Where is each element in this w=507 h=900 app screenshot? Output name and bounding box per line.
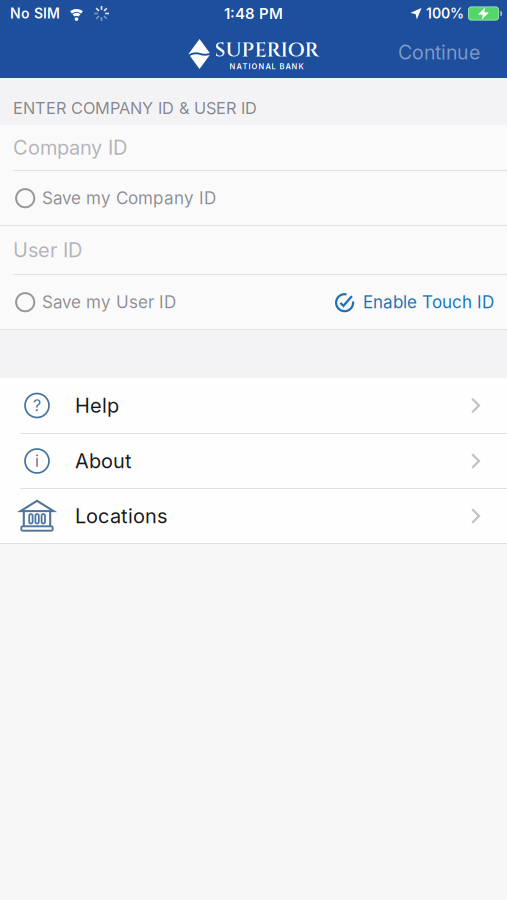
button[interactable]: Save my Company ID — [0, 171, 507, 225]
staticText: Continue — [398, 41, 480, 64]
staticText: Company ID — [13, 135, 127, 160]
staticText: i — [35, 451, 39, 471]
staticText: About — [75, 449, 132, 473]
staticText: No SIM — [10, 5, 60, 22]
staticText: N A T I O N A L B A N K — [229, 62, 303, 71]
staticText: Locations — [75, 504, 167, 528]
staticText: Help — [75, 393, 119, 418]
staticText: 1:48 PM — [224, 4, 283, 22]
staticText: User ID — [13, 238, 82, 262]
staticText: ENTER COMPANY ID & USER ID — [13, 98, 257, 118]
staticText: SUPERIOR — [214, 37, 318, 64]
staticText: Save my Company ID — [42, 188, 216, 208]
button[interactable]: Help — [0, 378, 507, 433]
staticText: Save my User ID — [42, 292, 176, 312]
staticText: ? — [33, 396, 41, 415]
button[interactable]: User ID — [0, 226, 507, 274]
button[interactable]: About — [0, 434, 507, 488]
staticText: Enable Touch ID — [363, 292, 494, 312]
button[interactable]: Save my User ID — [0, 292, 176, 312]
button[interactable]: Enable Touch ID — [335, 291, 507, 312]
button[interactable]: Continue — [398, 41, 507, 64]
button[interactable]: Locations — [0, 489, 507, 543]
button[interactable]: Company ID — [0, 125, 507, 170]
staticText: 100% — [426, 5, 464, 22]
